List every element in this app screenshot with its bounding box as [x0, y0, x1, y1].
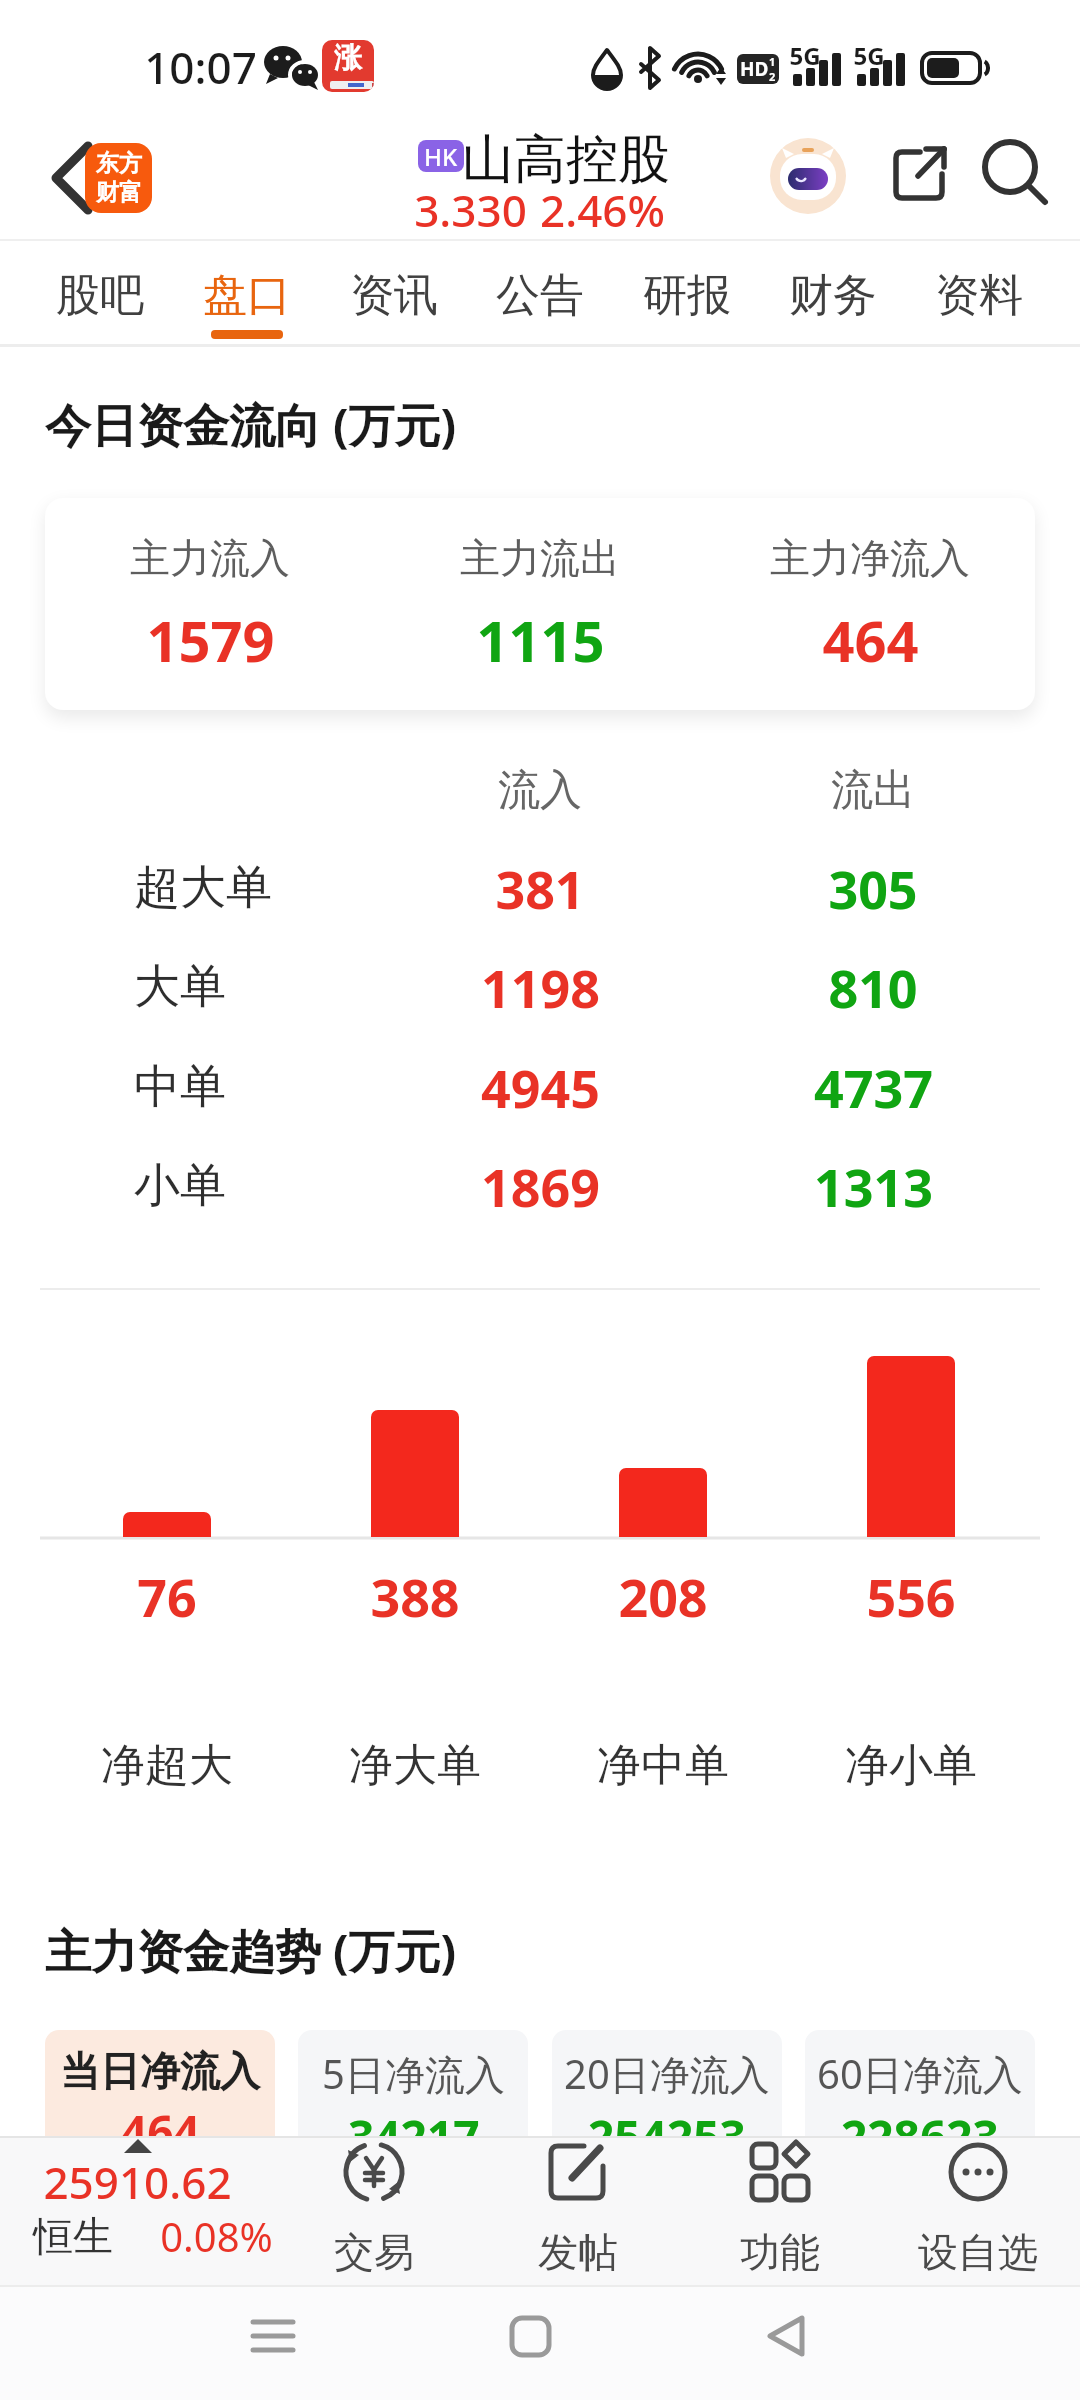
- button[interactable]: [888, 138, 956, 206]
- staticText: 山高控股: [462, 127, 670, 193]
- staticText: 2: [769, 69, 776, 84]
- staticText: 功能: [740, 2227, 820, 2277]
- button[interactable]: 资料: [917, 262, 1041, 348]
- staticText: 研报: [643, 268, 731, 323]
- staticText: 34217: [348, 2105, 480, 2168]
- staticText: 公告: [496, 268, 584, 323]
- button[interactable]: 主力流入: [45, 498, 1035, 710]
- staticText: 3.330: [414, 180, 527, 240]
- button[interactable]: 财务: [771, 262, 895, 348]
- staticText: 464: [822, 602, 919, 678]
- staticText: 1313: [814, 1151, 933, 1222]
- staticText: 流出: [831, 764, 915, 817]
- staticText: 净小单: [845, 1738, 977, 1793]
- staticText: 小单: [134, 1157, 226, 1215]
- staticText: 388: [370, 1561, 460, 1632]
- staticText: 5日净流入: [322, 2046, 505, 2101]
- button[interactable]: 5日净流入: [298, 2030, 528, 2180]
- button[interactable]: [760, 2308, 820, 2368]
- staticText: 资讯: [350, 268, 438, 323]
- button[interactable]: 研报: [625, 262, 749, 348]
- staticText: 资料: [935, 268, 1023, 323]
- staticText: HK: [424, 140, 458, 172]
- staticText: 主力净流入: [770, 533, 970, 583]
- staticText: 20日净流入: [564, 2046, 770, 2101]
- staticText: 超大单: [134, 859, 272, 917]
- staticText: 净大单: [349, 1738, 481, 1793]
- staticText: 208: [618, 1561, 708, 1632]
- staticText: 流入: [498, 764, 582, 817]
- staticText: 4737: [814, 1052, 933, 1123]
- staticText: 556: [866, 1561, 956, 1632]
- staticText: 中单: [134, 1058, 226, 1116]
- staticText: 1: [769, 54, 776, 69]
- button[interactable]: [980, 138, 1052, 210]
- staticText: 财富: [96, 178, 142, 207]
- staticText: 0.08%: [160, 2209, 273, 2263]
- staticText: 25910.62: [43, 2152, 232, 2212]
- staticText: 76: [137, 1561, 197, 1632]
- staticText: 228623: [841, 2105, 999, 2168]
- button[interactable]: 设自选: [898, 2138, 1058, 2278]
- staticText: 设自选: [918, 2227, 1038, 2277]
- button[interactable]: 盘口: [185, 262, 309, 348]
- staticText: 今日资金流向 (万元): [45, 393, 457, 456]
- staticText: 10:07: [144, 37, 257, 97]
- staticText: 东方: [96, 149, 142, 178]
- staticText: 盘口: [203, 268, 291, 323]
- staticText: 净超大: [101, 1738, 233, 1793]
- staticText: 2.46%: [540, 180, 665, 240]
- button[interactable]: [243, 2308, 303, 2368]
- staticText: 涨: [334, 40, 362, 75]
- staticText: 1579: [146, 602, 275, 678]
- staticText: 5G: [853, 39, 885, 72]
- staticText: 恒生: [33, 2211, 113, 2261]
- staticText: 当日净流入: [60, 2046, 260, 2096]
- staticText: 发帖: [538, 2227, 618, 2277]
- button[interactable]: [30, 130, 100, 220]
- button[interactable]: 东方: [85, 143, 152, 213]
- button[interactable]: 功能: [700, 2138, 860, 2278]
- staticText: 财务: [789, 268, 877, 323]
- button[interactable]: 交易: [294, 2138, 454, 2278]
- staticText: 254253: [588, 2105, 746, 2168]
- button[interactable]: 股吧: [38, 262, 162, 348]
- button[interactable]: 公告: [478, 262, 602, 348]
- staticText: 305: [828, 853, 918, 924]
- button[interactable]: [0, 2140, 290, 2270]
- button[interactable]: 发帖: [498, 2138, 658, 2278]
- button[interactable]: [500, 2308, 560, 2368]
- staticText: 1115: [476, 602, 605, 678]
- button[interactable]: 60日净流入: [805, 2030, 1035, 2180]
- staticText: 交易: [334, 2227, 414, 2277]
- staticText: 主力流出: [460, 533, 620, 583]
- staticText: 净中单: [597, 1738, 729, 1793]
- staticText: 5G: [789, 39, 821, 72]
- staticText: HD: [740, 56, 769, 82]
- staticText: 股吧: [56, 268, 144, 323]
- staticText: 1869: [481, 1151, 600, 1222]
- button[interactable]: 资讯: [332, 262, 456, 348]
- staticText: 主力资金趋势 (万元): [45, 1919, 457, 1982]
- staticText: 464: [121, 2100, 200, 2163]
- button[interactable]: 20日净流入: [552, 2030, 782, 2180]
- staticText: 810: [828, 952, 918, 1023]
- staticText: 4945: [481, 1052, 600, 1123]
- staticText: 60日净流入: [817, 2046, 1023, 2101]
- button[interactable]: 当日净流入: [45, 2030, 275, 2180]
- staticText: 主力流入: [130, 533, 290, 583]
- staticText: 大单: [134, 958, 226, 1016]
- staticText: 1198: [481, 952, 600, 1023]
- button[interactable]: [770, 138, 846, 214]
- staticText: 381: [495, 853, 585, 924]
